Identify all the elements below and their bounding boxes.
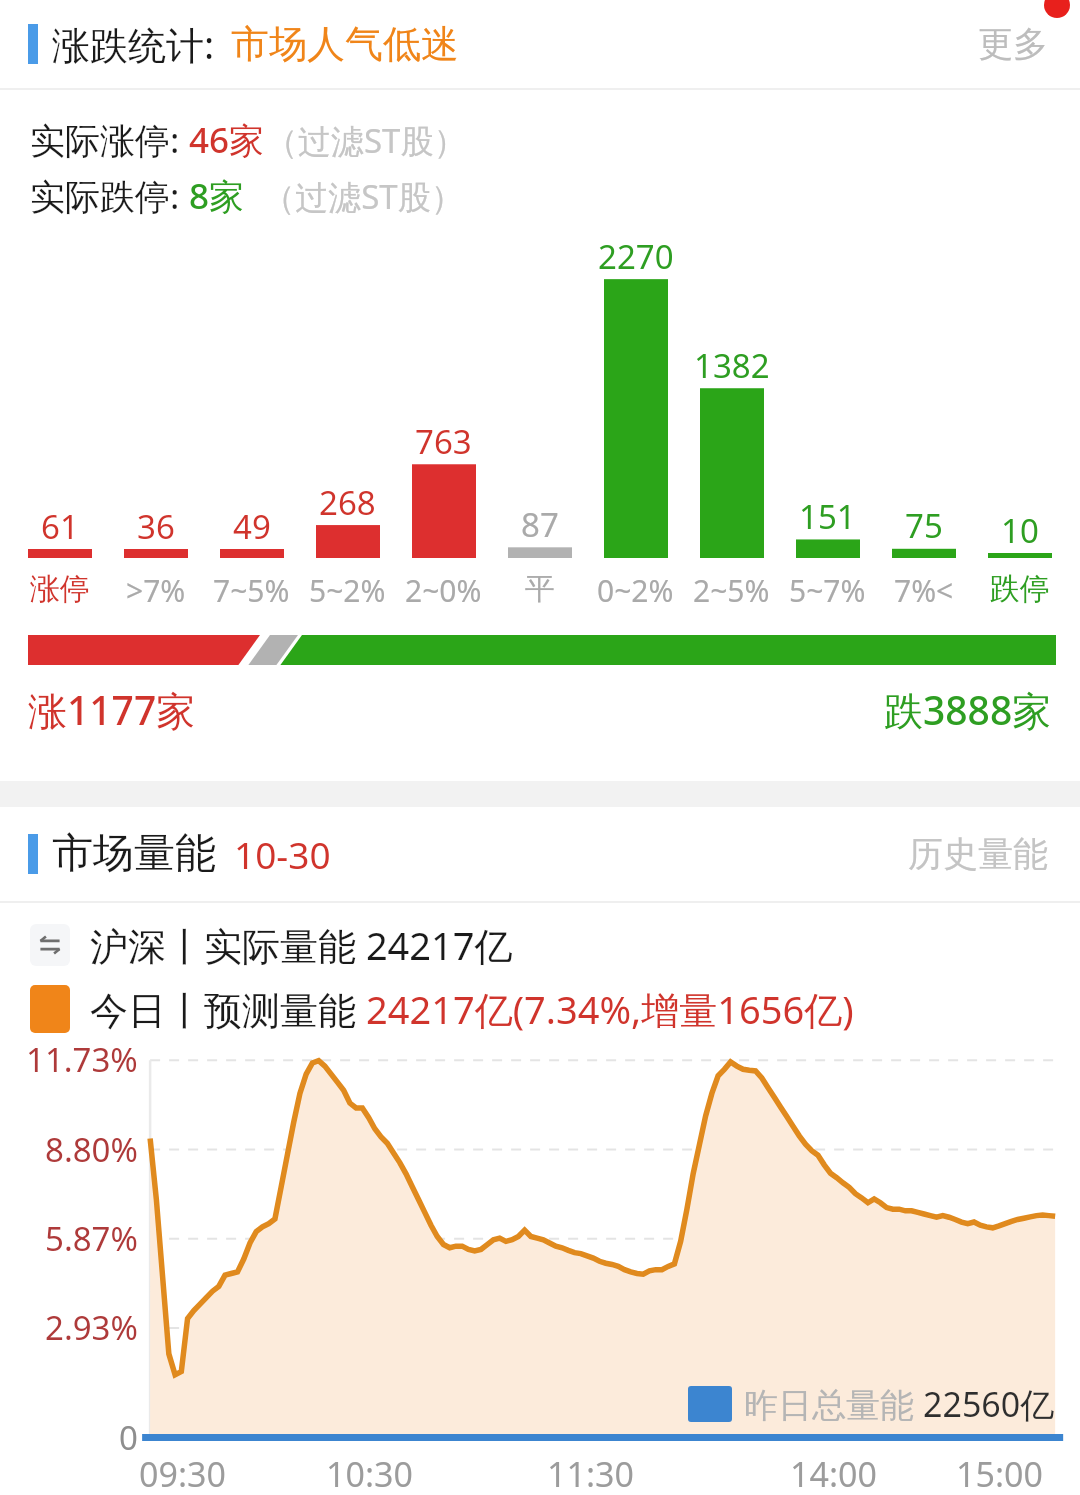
staticText: 市场量能 bbox=[52, 828, 216, 880]
staticText: 7~5% bbox=[213, 570, 290, 611]
staticText: （过滤ST股） bbox=[265, 118, 467, 163]
staticText: 268 bbox=[319, 480, 376, 525]
staticText: 涨停 bbox=[30, 570, 90, 608]
staticText: 49 bbox=[233, 504, 271, 549]
staticText: 更多 bbox=[978, 22, 1048, 66]
staticText: 2~5% bbox=[693, 570, 770, 611]
staticText: 0~2% bbox=[597, 570, 674, 611]
staticText: 0 bbox=[119, 1415, 138, 1460]
staticText: 2270 bbox=[598, 234, 674, 279]
staticText: 87 bbox=[521, 502, 559, 547]
staticText: 市场人气低迷 bbox=[231, 20, 459, 68]
staticText: 实际涨停: bbox=[30, 116, 189, 164]
staticText: 8.80% bbox=[45, 1127, 138, 1172]
staticText: 8家 bbox=[189, 172, 245, 220]
staticText: 昨日总量能 bbox=[744, 1381, 923, 1427]
staticText: 实际跌停: bbox=[30, 172, 189, 220]
staticText: 36 bbox=[137, 504, 175, 549]
staticText: 763 bbox=[415, 419, 472, 464]
staticText: 61 bbox=[41, 504, 79, 549]
staticText: 涨1177家 bbox=[28, 683, 196, 736]
staticText: 10:30 bbox=[326, 1451, 413, 1495]
staticText: >7% bbox=[126, 570, 186, 611]
staticText: 1382 bbox=[694, 343, 770, 388]
button[interactable]: 市场量能 bbox=[0, 807, 1080, 901]
staticText: 15:00 bbox=[956, 1451, 1043, 1495]
staticText: 11.73% bbox=[26, 1037, 138, 1082]
staticText: 今日丨预测量能 bbox=[90, 983, 366, 1035]
staticText: 跌停 bbox=[990, 570, 1050, 608]
staticText: 跌3888家 bbox=[884, 683, 1052, 736]
staticText: 09:30 bbox=[139, 1451, 226, 1495]
staticText: 11:30 bbox=[547, 1451, 634, 1495]
staticText: （过滤ST股） bbox=[245, 174, 464, 219]
staticText: 2~0% bbox=[405, 570, 482, 611]
button[interactable]: 涨跌统计: bbox=[0, 0, 1080, 88]
staticText: 7%< bbox=[894, 570, 954, 611]
staticText: 22560亿 bbox=[923, 1381, 1055, 1427]
button[interactable]: Switch market bbox=[30, 924, 70, 966]
staticText: 75 bbox=[905, 503, 943, 548]
staticText: 历史量能 bbox=[908, 832, 1048, 876]
staticText: 涨跌统计: bbox=[52, 18, 215, 70]
staticText: 2.93% bbox=[45, 1305, 138, 1350]
staticText: 5~7% bbox=[789, 570, 866, 611]
staticText: 5~2% bbox=[309, 570, 386, 611]
staticText: 10 bbox=[1001, 508, 1039, 553]
staticText: 14:00 bbox=[790, 1451, 877, 1495]
staticText: 24217亿(7.34%,增量1656亿) bbox=[366, 983, 854, 1035]
staticText: 151 bbox=[799, 494, 856, 539]
staticText: 沪深丨实际量能 24217亿 bbox=[90, 919, 513, 971]
staticText: 46家 bbox=[189, 116, 265, 164]
staticText: 5.87% bbox=[45, 1216, 138, 1261]
staticText: 10-30 bbox=[234, 829, 331, 879]
staticText: 平 bbox=[525, 570, 555, 608]
